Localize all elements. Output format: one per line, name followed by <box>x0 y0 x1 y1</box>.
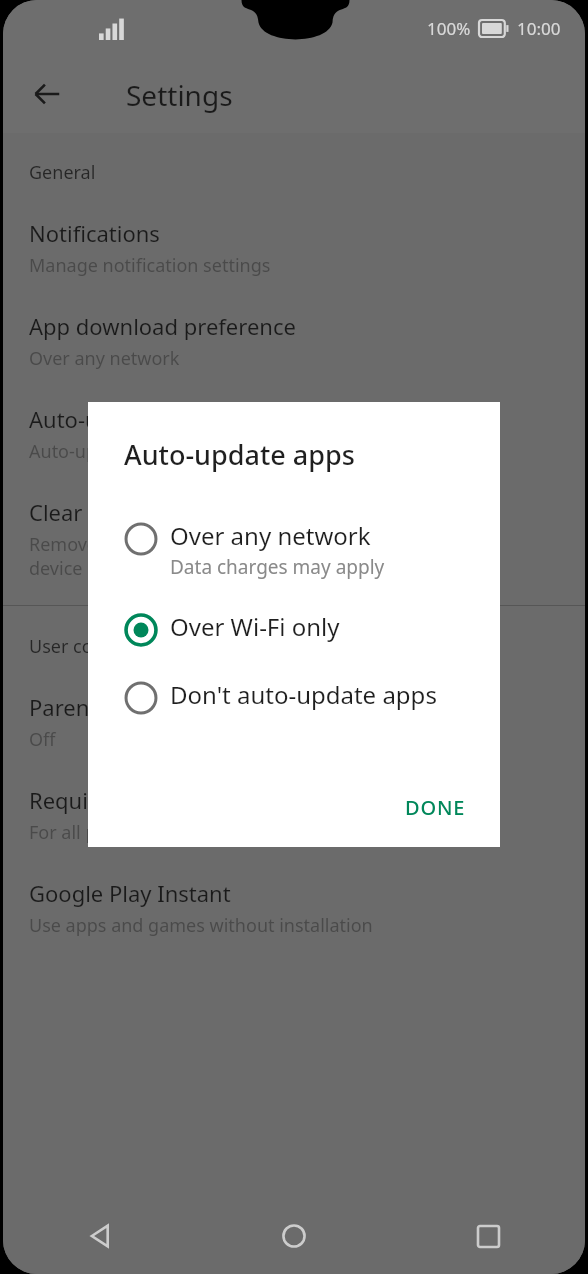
staticText: For all purchases through Google Play on… <box>29 820 471 845</box>
staticText: Over Wi-Fi only <box>170 610 340 643</box>
staticText: Manage notification settings <box>29 253 271 278</box>
staticText: Auto-update apps <box>124 436 355 473</box>
staticText: DONE <box>405 794 466 821</box>
button[interactable]: Recents <box>391 1198 585 1274</box>
staticText: Auto-update apps over Wi-Fi only <box>29 439 309 464</box>
staticText: Remove the searches you have performed o… <box>29 532 448 580</box>
button[interactable]: Back <box>3 1198 197 1274</box>
button[interactable]: Clear local search history <box>3 497 585 580</box>
button[interactable]: Over any network <box>88 513 500 586</box>
staticText: Require authentication for purchases <box>29 785 413 815</box>
staticText: Parental controls <box>29 692 205 722</box>
button[interactable]: Home <box>197 1198 391 1274</box>
staticText: Notifications <box>29 218 160 248</box>
staticText: Don't auto-update apps <box>170 678 437 711</box>
staticText: Google Play Instant <box>29 878 231 908</box>
staticText: Clear local search history <box>29 497 287 527</box>
staticText: Data charges may apply <box>170 554 385 580</box>
staticText: Over any network <box>170 519 371 552</box>
button[interactable]: Notifications <box>3 218 585 278</box>
button[interactable]: Parental controls <box>3 692 585 752</box>
staticText: Use apps and games without installation <box>29 913 373 938</box>
button[interactable]: Auto-update apps <box>3 404 585 464</box>
staticText: 10:00 <box>517 17 561 40</box>
staticText: 100% <box>427 17 471 40</box>
staticText: User controls <box>29 634 142 659</box>
staticText: App download preference <box>29 311 296 341</box>
button[interactable]: DONE <box>389 784 482 831</box>
button[interactable]: App download preference <box>3 311 585 371</box>
staticText: Auto-update apps <box>29 404 214 434</box>
staticText: Over any network <box>29 346 180 371</box>
staticText: Off <box>29 727 56 752</box>
button[interactable]: Require authentication for purchases <box>3 785 585 845</box>
button[interactable]: Over Wi-Fi only <box>88 604 500 650</box>
staticText: Settings <box>126 76 233 114</box>
staticText: General <box>29 160 96 185</box>
button[interactable]: Don't auto-update apps <box>88 672 500 718</box>
button[interactable]: Back <box>19 66 75 122</box>
button[interactable]: Google Play Instant <box>3 878 585 938</box>
